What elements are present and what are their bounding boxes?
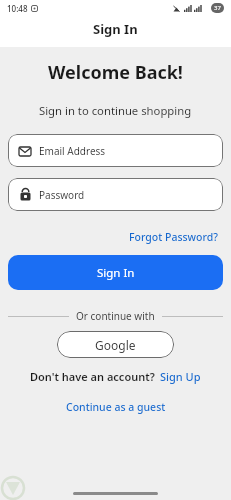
staticText: 10:48 [7, 3, 28, 14]
staticText: Don't have an account? [30, 369, 155, 384]
button[interactable]: Sign Up [160, 369, 201, 384]
staticText: Email Address [39, 144, 106, 158]
button[interactable]: Google [57, 331, 174, 358]
staticText: Sign In [93, 20, 138, 38]
button[interactable]: Email Address [8, 134, 223, 167]
staticText: 37 [214, 4, 221, 12]
staticText: Sign In [97, 265, 135, 281]
button[interactable]: Forgot Password? [129, 230, 218, 244]
button[interactable]: Password [8, 178, 223, 211]
staticText: Or continue with [76, 309, 155, 323]
staticText: Sign in to continue shopping [39, 103, 192, 118]
staticText: Google [95, 337, 136, 353]
button[interactable]: Continue as a guest [66, 400, 166, 414]
button[interactable]: Sign In [8, 255, 223, 290]
staticText: Password [39, 188, 85, 202]
staticText: Welcome Back! [48, 60, 183, 85]
